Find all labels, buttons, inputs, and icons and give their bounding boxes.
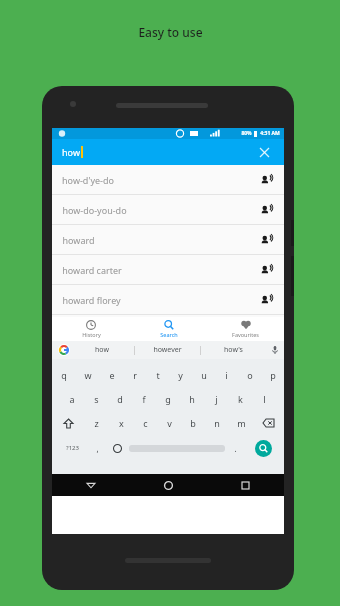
- button[interactable]: o: [238, 363, 261, 387]
- staticText: p: [270, 369, 276, 381]
- button[interactable]: Voice input: [266, 341, 284, 359]
- button[interactable]: k: [228, 387, 252, 411]
- button[interactable]: Recent apps: [207, 474, 284, 496]
- button[interactable]: v: [157, 411, 181, 435]
- button[interactable]: Shift: [52, 411, 84, 435]
- button[interactable]: i: [215, 363, 238, 387]
- button[interactable]: b: [181, 411, 205, 435]
- staticText: f: [142, 393, 146, 405]
- button[interactable]: Backspace: [253, 411, 284, 435]
- button[interactable]: q: [52, 363, 76, 387]
- staticText: y: [178, 369, 183, 381]
- staticText: n: [214, 417, 220, 429]
- button[interactable]: Search: [130, 317, 207, 341]
- button[interactable]: however: [135, 341, 200, 359]
- staticText: howard florey: [62, 294, 121, 306]
- button[interactable]: how-do-you-do: [52, 195, 284, 224]
- button[interactable]: Google: [58, 344, 70, 356]
- button[interactable]: ,: [88, 435, 106, 461]
- staticText: k: [238, 393, 243, 405]
- staticText: d: [117, 393, 123, 405]
- staticText: how's: [224, 345, 243, 355]
- staticText: s: [94, 393, 99, 405]
- staticText: how-do-you-do: [62, 204, 127, 216]
- staticText: Favourites: [232, 331, 259, 338]
- staticText: how-d'ye-do: [62, 174, 114, 186]
- button[interactable]: howard florey: [52, 285, 284, 314]
- button[interactable]: howard carter: [52, 255, 284, 284]
- staticText: g: [165, 393, 171, 405]
- button[interactable]: a: [60, 387, 84, 411]
- button[interactable]: how's: [201, 341, 266, 359]
- staticText: howard: [62, 234, 95, 246]
- button[interactable]: how-d'ye-do: [52, 165, 284, 194]
- staticText: r: [133, 369, 137, 381]
- button[interactable]: Back: [52, 474, 130, 496]
- button[interactable]: u: [192, 363, 215, 387]
- staticText: how: [62, 146, 80, 158]
- button[interactable]: p: [261, 363, 284, 387]
- staticText: how: [95, 345, 109, 355]
- staticText: t: [156, 369, 160, 381]
- button[interactable]: Search: [255, 440, 272, 457]
- button[interactable]: m: [229, 411, 253, 435]
- button[interactable]: Clear search: [254, 142, 274, 162]
- staticText: o: [247, 369, 253, 381]
- staticText: e: [109, 369, 115, 381]
- button[interactable]: d: [108, 387, 132, 411]
- button[interactable]: e: [100, 363, 123, 387]
- button[interactable]: h: [180, 387, 204, 411]
- button[interactable]: ?123: [56, 435, 88, 461]
- staticText: ?123: [66, 444, 79, 452]
- staticText: h: [189, 393, 195, 405]
- button[interactable]: w: [76, 363, 100, 387]
- staticText: .: [234, 443, 237, 454]
- button[interactable]: y: [169, 363, 192, 387]
- staticText: Search: [160, 331, 178, 338]
- staticText: howard carter: [62, 264, 122, 276]
- staticText: q: [61, 369, 67, 381]
- button[interactable]: .: [225, 435, 246, 461]
- button[interactable]: z: [84, 411, 109, 435]
- staticText: w: [84, 369, 92, 381]
- other: Pronounce howard: [260, 233, 274, 247]
- staticText: c: [143, 417, 148, 429]
- staticText: i: [225, 369, 228, 381]
- button[interactable]: c: [133, 411, 157, 435]
- button[interactable]: f: [132, 387, 156, 411]
- button[interactable]: how: [70, 341, 134, 359]
- other: Pronounce howard carter: [260, 263, 274, 277]
- button[interactable]: Favourites: [207, 317, 284, 341]
- staticText: l: [263, 393, 266, 405]
- staticText: however: [153, 345, 182, 355]
- button[interactable]: howard: [52, 225, 284, 254]
- button[interactable]: j: [204, 387, 228, 411]
- staticText: b: [190, 417, 196, 429]
- button[interactable]: Home: [130, 474, 207, 496]
- staticText: u: [201, 369, 207, 381]
- button[interactable]: s: [84, 387, 108, 411]
- button[interactable]: x: [109, 411, 133, 435]
- staticText: a: [69, 393, 75, 405]
- button[interactable]: n: [205, 411, 229, 435]
- staticText: j: [215, 393, 218, 405]
- button[interactable]: g: [156, 387, 180, 411]
- staticText: x: [119, 417, 124, 429]
- staticText: m: [237, 417, 246, 429]
- staticText: History: [82, 331, 101, 338]
- staticText: Easy to use: [138, 24, 203, 40]
- button[interactable]: l: [252, 387, 276, 411]
- staticText: ,: [96, 443, 99, 454]
- button[interactable]: History: [52, 317, 130, 341]
- staticText: v: [167, 417, 172, 429]
- staticText: z: [94, 417, 99, 429]
- staticText: 80%: [241, 130, 252, 137]
- other: Pronounce howard florey: [260, 293, 274, 307]
- other: Pronounce how-d'ye-do: [260, 173, 274, 187]
- other: Pronounce how-do-you-do: [260, 203, 274, 217]
- button[interactable]: Emoji: [106, 435, 129, 461]
- button[interactable]: t: [146, 363, 169, 387]
- button[interactable]: r: [123, 363, 146, 387]
- staticText: 4:31 AM: [260, 130, 280, 137]
